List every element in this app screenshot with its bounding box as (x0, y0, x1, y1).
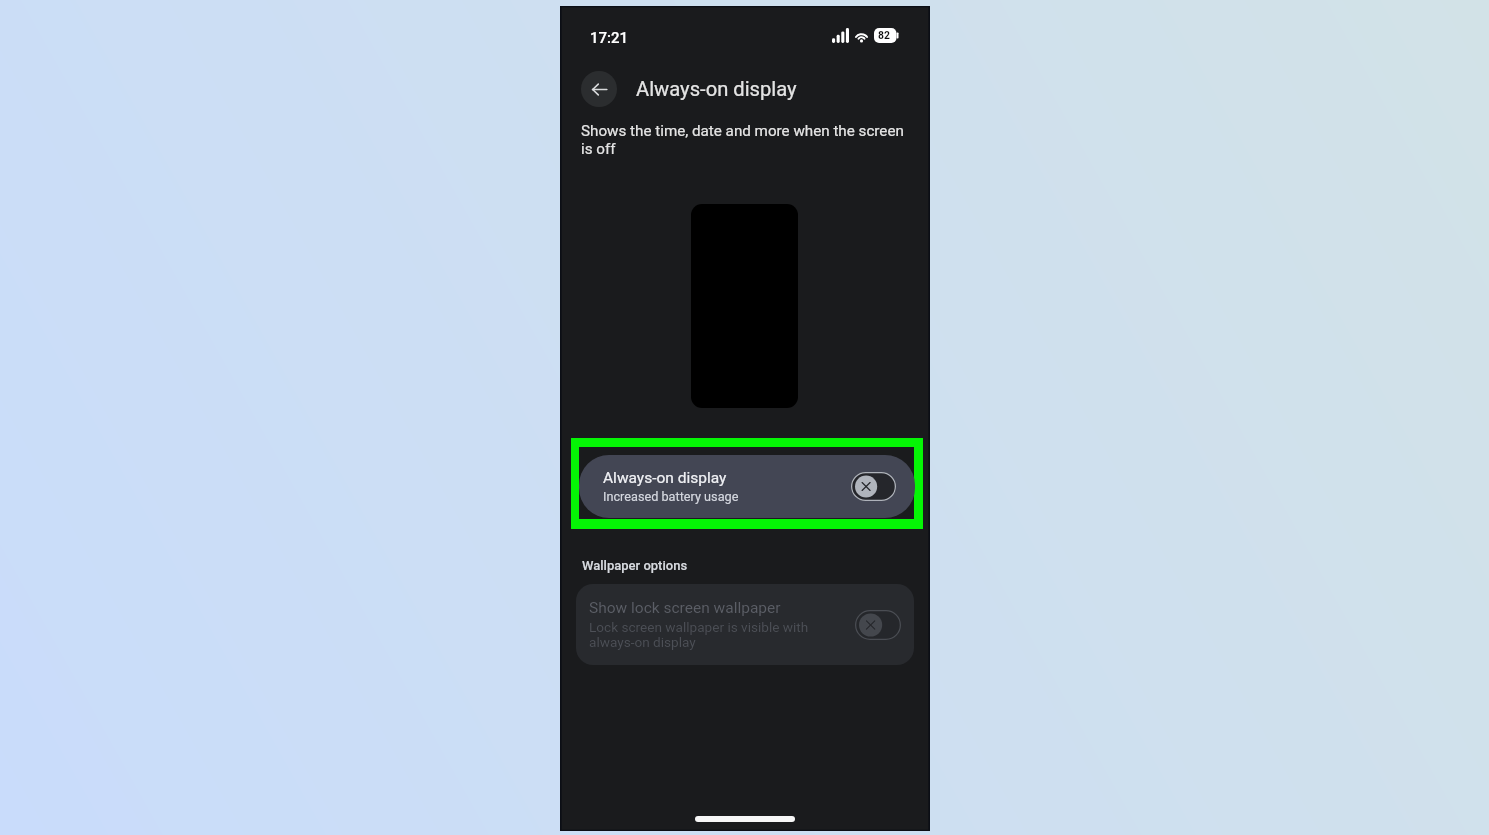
button[interactable]: Always-on display (579, 455, 915, 518)
staticText: Lock screen wallpaper is visible with al… (589, 619, 811, 651)
staticText: Increased battery usage (603, 489, 739, 504)
button[interactable]: Always-on display toggle, off (851, 472, 896, 501)
staticText: Wallpaper options (582, 558, 688, 573)
button[interactable]: Back (581, 71, 617, 107)
button[interactable]: Show lock screen wallpaper toggle, off (855, 610, 901, 640)
staticText: Shows the time, date and more when the s… (581, 122, 913, 157)
staticText: Show lock screen wallpaper (589, 599, 781, 617)
staticText: 17:21 (590, 29, 629, 47)
staticText: 82 (878, 29, 890, 41)
button[interactable]: Show lock screen wallpaper (576, 584, 914, 665)
staticText: Always-on display (603, 469, 727, 487)
staticText: Always-on display (636, 77, 797, 101)
